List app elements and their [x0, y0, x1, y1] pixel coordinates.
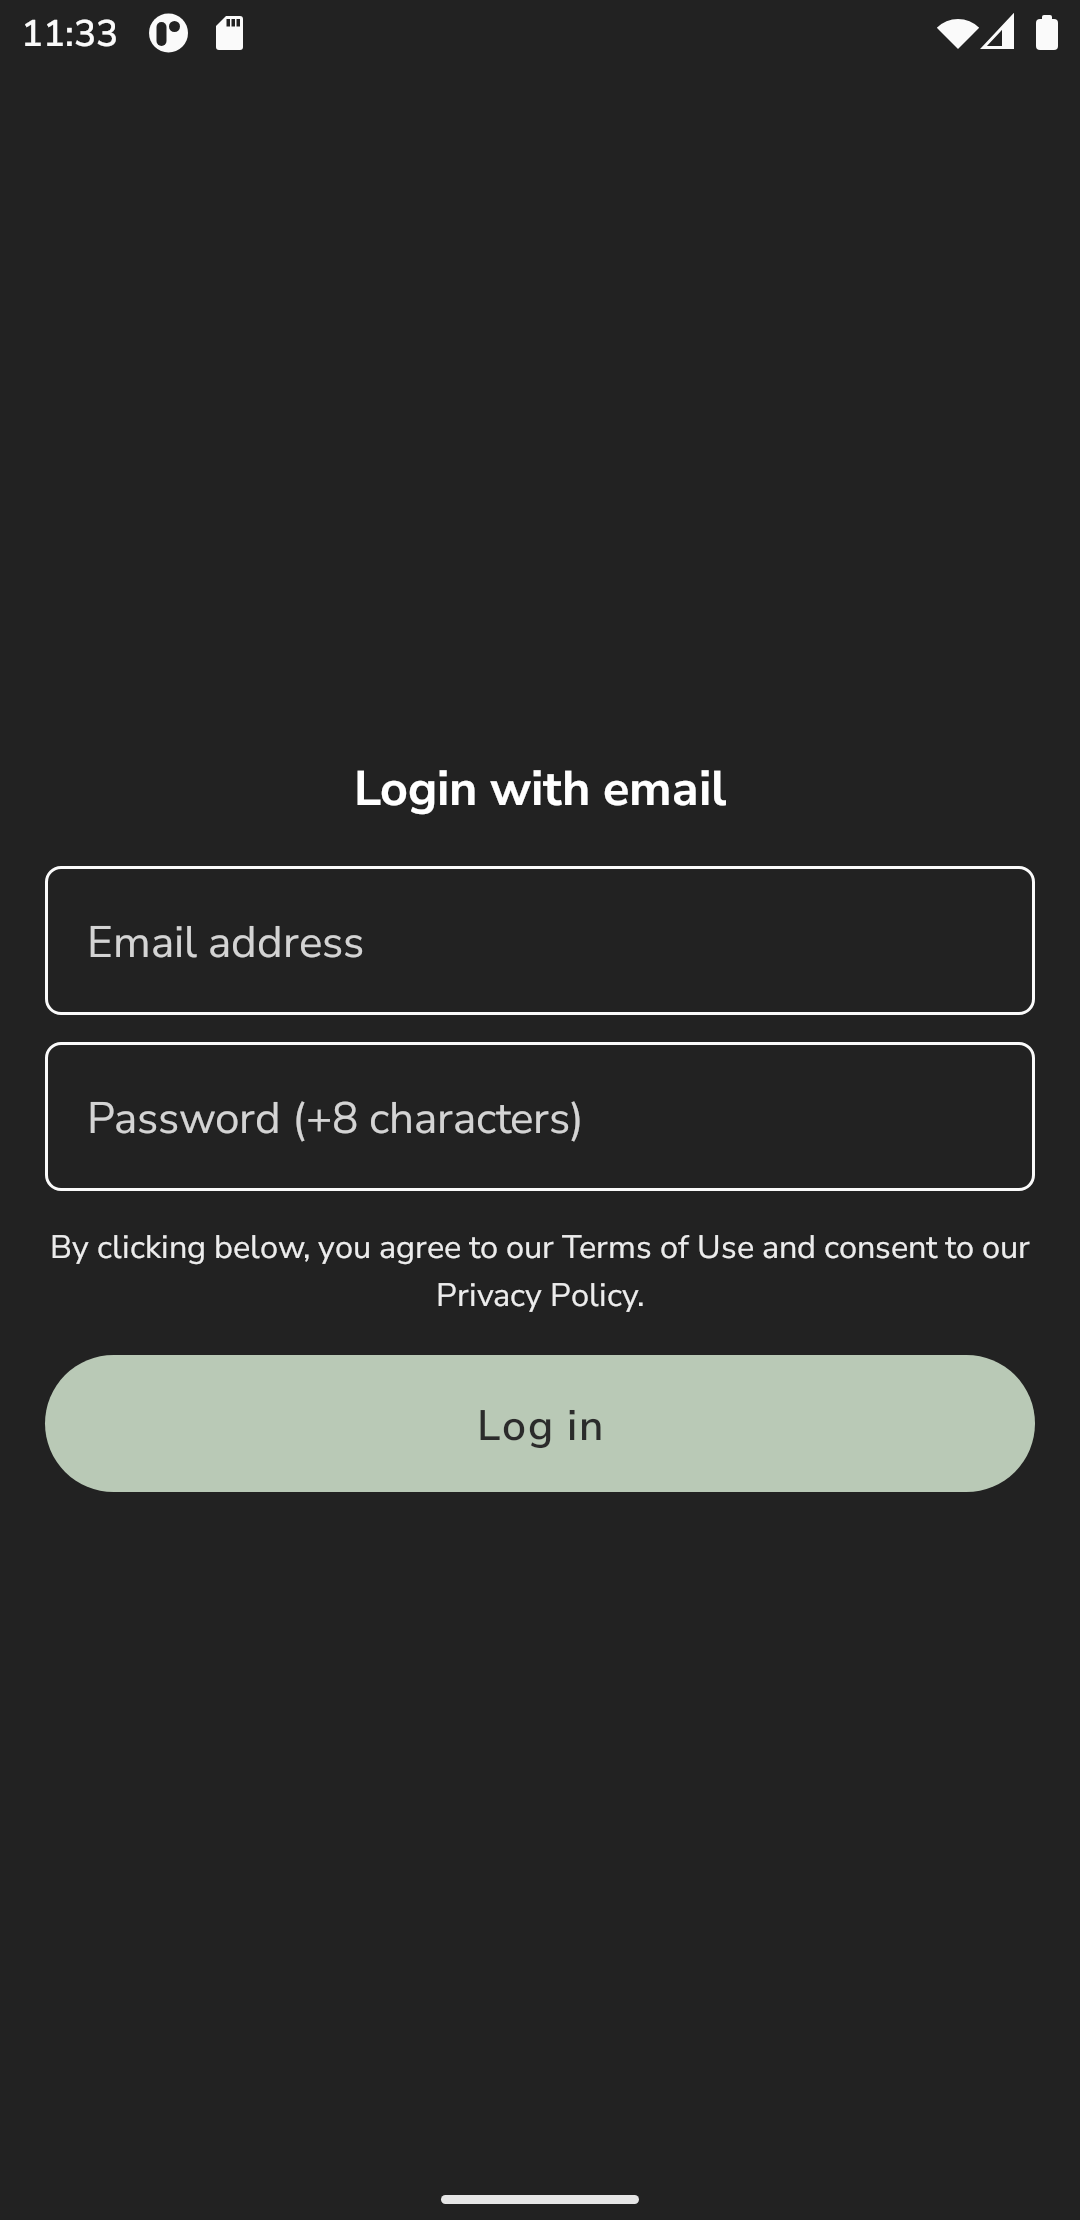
button[interactable]: [45, 1042, 1035, 1191]
button[interactable]: [45, 866, 1035, 1015]
button[interactable]: [45, 1355, 1035, 1492]
